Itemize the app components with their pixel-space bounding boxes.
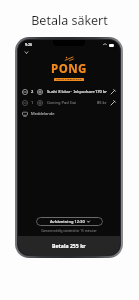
other: Minska antal: [22, 89, 28, 95]
staticText: Genomsnittlig väntetid är 15 minuter: [18, 229, 120, 233]
staticText: 9:26: [25, 42, 33, 47]
staticText: Goeing Pad Gai: [47, 100, 97, 105]
other: Ändra: [110, 100, 116, 106]
button[interactable]: Betala 255 kr: [18, 236, 120, 255]
staticText: 85 kr: [97, 100, 107, 105]
staticText: Sushi 8 bitar · Inkpudsare: [47, 89, 95, 94]
other: Minska antal: [22, 100, 28, 106]
staticText: 2: [31, 89, 34, 94]
staticText: Avhämtning 12:30: [50, 219, 85, 224]
staticText: Betala säkert: [0, 12, 139, 29]
button[interactable]: Stäng: [24, 50, 29, 55]
button[interactable]: Meddelande: [18, 108, 120, 119]
staticText: ASIAN STREETFOOD: [56, 78, 82, 81]
staticText: PONG: [51, 61, 87, 77]
staticText: 170 kr: [95, 89, 107, 94]
staticText: Betala 255 kr: [52, 242, 86, 249]
other: Öka antal: [37, 89, 43, 95]
other: Öka antal: [37, 100, 43, 106]
staticText: 1: [31, 100, 34, 105]
button[interactable]: Minska antal: [18, 97, 120, 108]
staticText: Meddelande: [31, 111, 55, 116]
button[interactable]: Minska antal: [18, 86, 120, 97]
button[interactable]: Avhämtning 12:30: [36, 217, 103, 226]
other: Ändra: [110, 89, 116, 95]
